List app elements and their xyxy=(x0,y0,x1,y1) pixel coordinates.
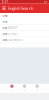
staticText: TIME xyxy=(2,32,7,36)
staticText: ABOUT xyxy=(8,26,17,30)
button[interactable]: TIME xyxy=(0,25,49,31)
staticText: IS ONLY xyxy=(8,32,18,36)
button[interactable]: Saved xyxy=(31,84,43,92)
staticText: Time xyxy=(2,14,8,18)
staticText: TIME xyxy=(2,26,7,30)
staticText: • xyxy=(24,89,25,92)
staticText: TIME xyxy=(2,20,7,24)
staticText: • xyxy=(37,89,38,92)
button[interactable]: TIME xyxy=(0,31,49,37)
staticText: TIME xyxy=(2,38,7,42)
button[interactable]: Search xyxy=(18,84,31,92)
staticText: • xyxy=(11,89,12,92)
button[interactable]: Home xyxy=(6,84,18,92)
button[interactable]: TIME xyxy=(0,37,49,43)
staticText: English Search xyxy=(8,5,33,11)
button[interactable]: TIME xyxy=(0,19,49,25)
staticText: 9:41 xyxy=(2,0,9,3)
staticText: LESS WORDS xyxy=(8,38,22,42)
button[interactable]: Menu xyxy=(2,6,6,10)
